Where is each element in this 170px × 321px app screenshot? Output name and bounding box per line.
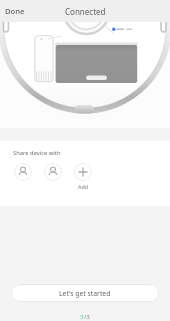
button[interactable]: Done	[0, 3, 30, 19]
staticText: Add	[78, 183, 89, 190]
staticText: Let's get started	[59, 289, 111, 298]
staticText: /3	[84, 313, 90, 321]
button[interactable]: Add	[74, 163, 92, 181]
staticText: Done	[5, 6, 25, 16]
button[interactable]: Shared user	[44, 163, 62, 181]
staticText: 3	[80, 313, 84, 321]
button[interactable]: Shared user	[14, 163, 32, 181]
staticText: Connected	[65, 6, 106, 17]
button[interactable]: Let's get started	[11, 284, 159, 302]
staticText: Share device with	[13, 149, 61, 157]
